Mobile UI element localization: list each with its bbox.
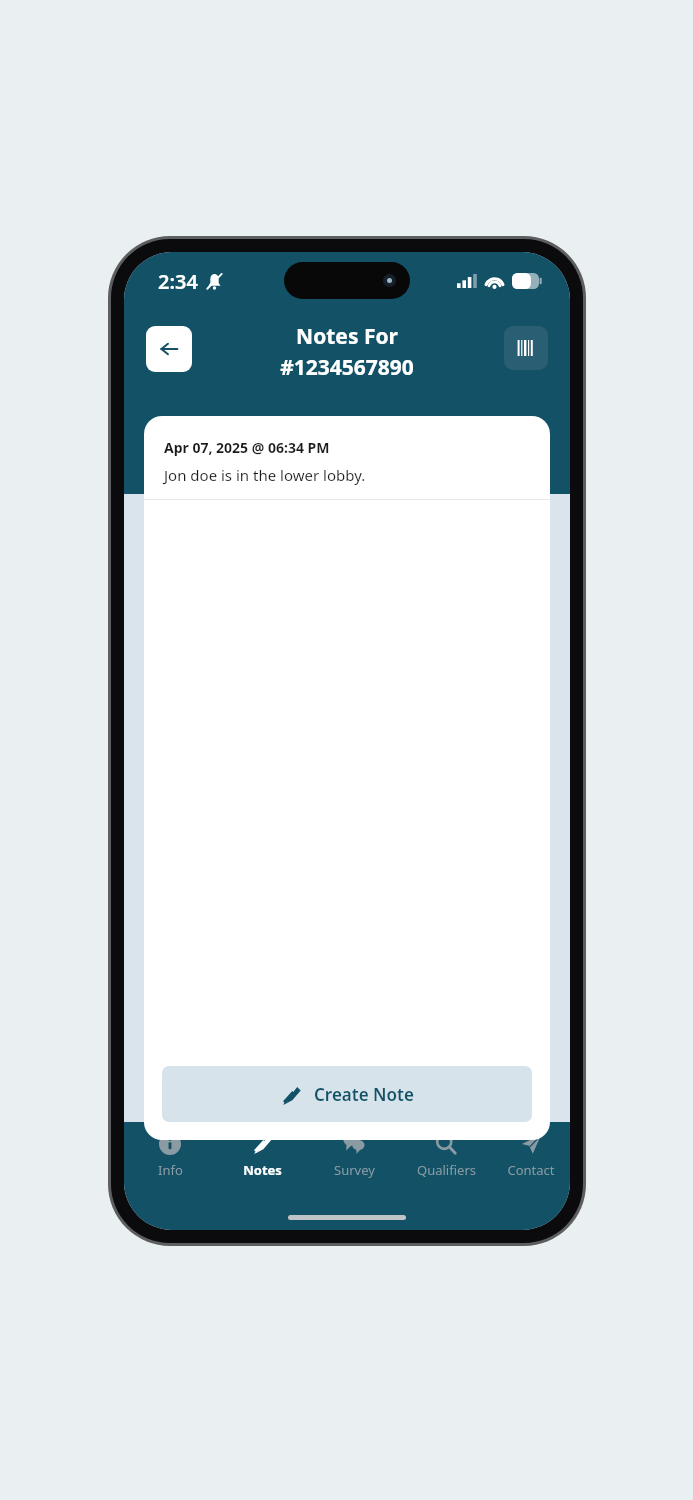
staticText: 2:34 — [158, 268, 198, 295]
staticText: Apr 07, 2025 @ 06:34 PM — [164, 438, 330, 457]
staticText: Jon doe is in the lower lobby. — [164, 465, 366, 485]
button[interactable]: Create Note — [162, 1066, 532, 1122]
staticText: Notes — [243, 1161, 282, 1179]
staticText: #1234567890 — [280, 353, 414, 382]
staticText: Survey — [334, 1161, 375, 1179]
button[interactable]: Scan barcode — [504, 326, 548, 370]
staticText: Qualifiers — [417, 1161, 476, 1179]
button[interactable]: Notes — [216, 1130, 308, 1181]
button[interactable]: Survey — [308, 1130, 400, 1181]
button[interactable]: Contact — [492, 1130, 570, 1181]
button[interactable]: Info — [124, 1130, 216, 1181]
staticText: Info — [158, 1161, 183, 1179]
button[interactable]: Qualifiers — [400, 1130, 492, 1181]
staticText: Create Note — [314, 1083, 414, 1106]
button[interactable]: Apr 07, 2025 @ 06:34 PM — [144, 416, 550, 499]
button[interactable]: Back — [146, 326, 192, 372]
staticText: Contact — [507, 1161, 555, 1179]
staticText: Notes For — [296, 322, 398, 351]
